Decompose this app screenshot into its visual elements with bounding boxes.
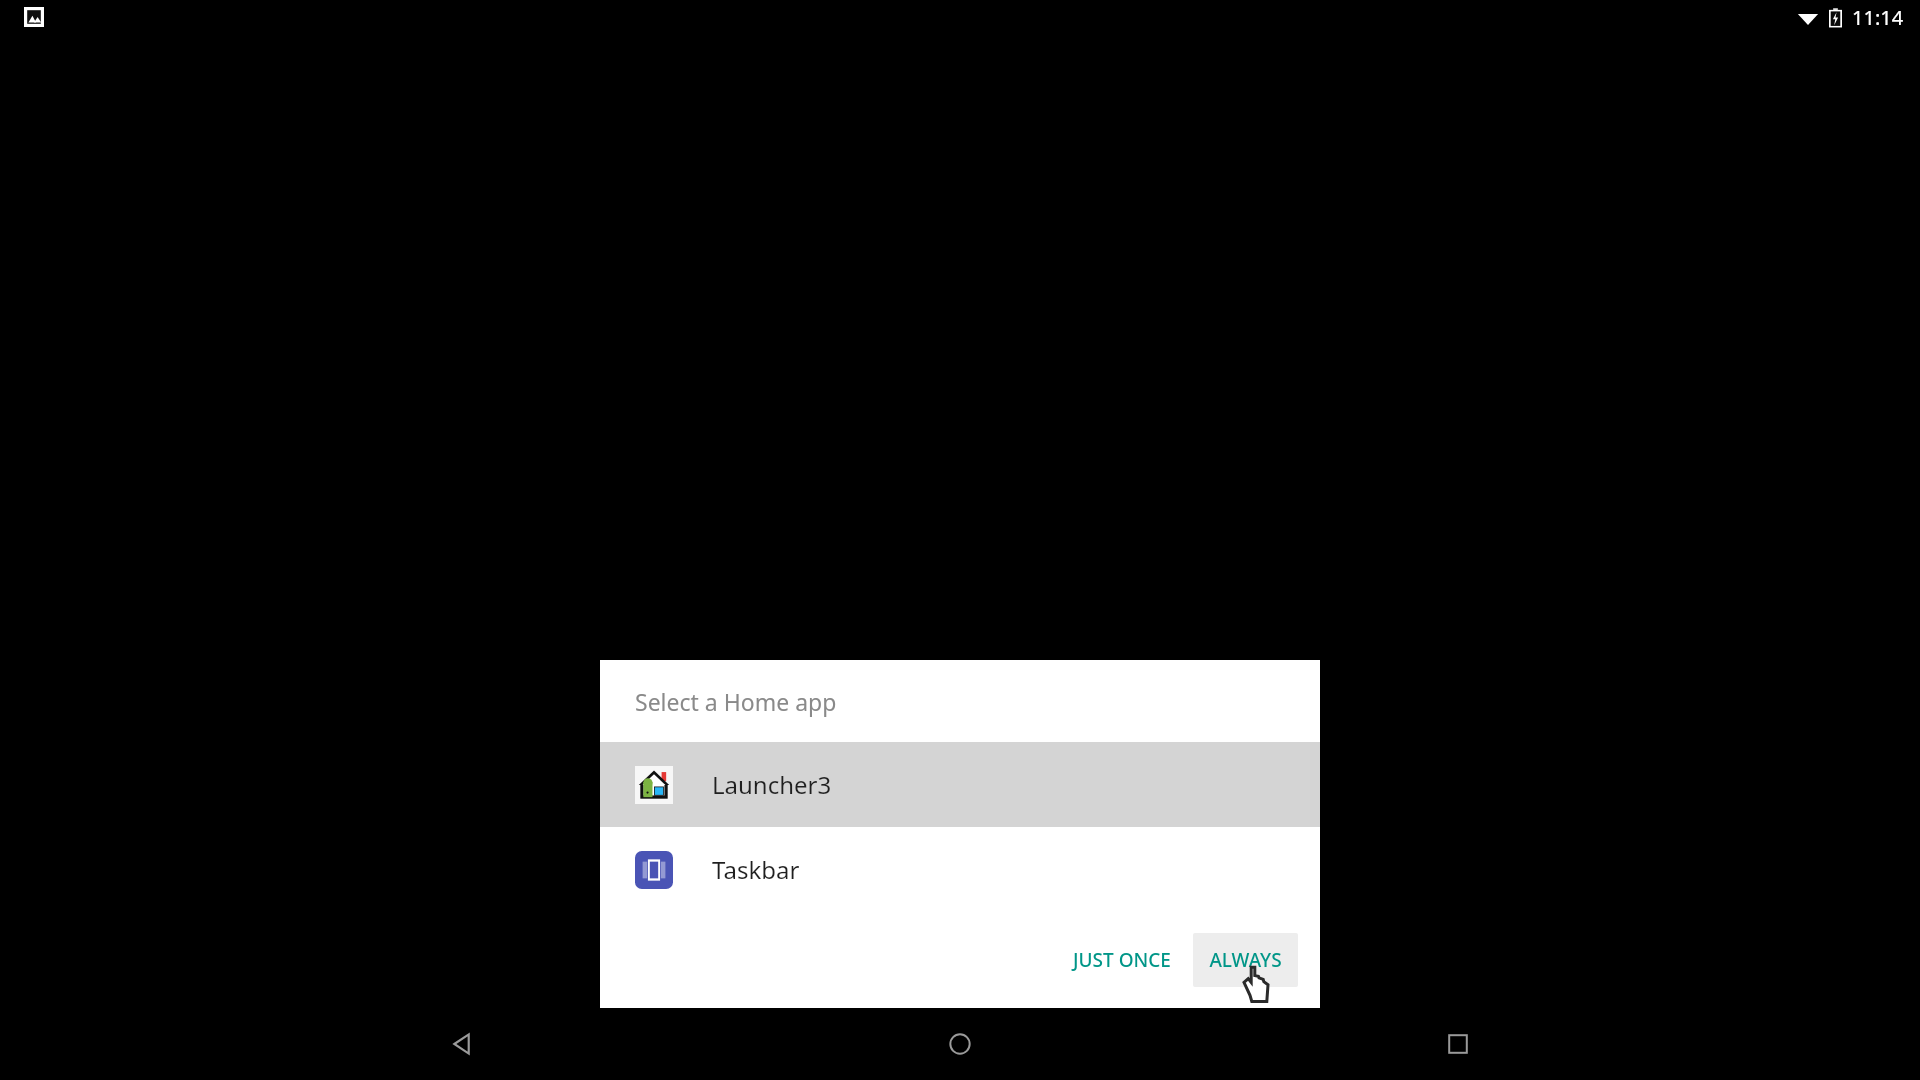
button[interactable]: Home [924,1008,996,1080]
staticText: 11:14 [1852,4,1904,31]
staticText: JUST ONCE [1073,947,1171,973]
staticText: Select a Home app [635,686,837,717]
button[interactable]: Recent apps [1422,1008,1494,1080]
button[interactable]: Launcher3 [600,742,1320,827]
button[interactable]: ALWAYS [1193,933,1298,987]
button[interactable]: Taskbar [600,827,1320,912]
button[interactable]: Back [426,1008,498,1080]
staticText: Taskbar [712,853,800,886]
button[interactable]: JUST ONCE [1057,933,1187,987]
staticText: Launcher3 [712,768,832,801]
staticText: ALWAYS [1209,947,1282,973]
